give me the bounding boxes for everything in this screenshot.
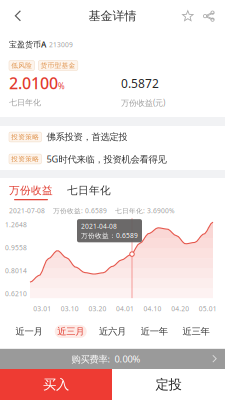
staticText: 5G时代来临，投资机会看得见 <box>46 153 166 165</box>
staticText: 2021-07-08 <box>9 206 45 215</box>
staticText: 购买费率: 0.00% <box>71 353 140 365</box>
staticText: 04.10 <box>144 304 162 313</box>
staticText: 05.01 <box>199 304 217 313</box>
staticText: 万份收益 <box>9 184 53 197</box>
button[interactable]: 投资策略 <box>0 148 225 170</box>
staticText: 04.20 <box>171 304 189 313</box>
staticText: % <box>58 81 65 91</box>
button[interactable]: 七日年化 <box>67 184 111 200</box>
staticText: 0.5872 <box>121 75 159 91</box>
staticText: 定投 <box>155 376 181 393</box>
staticText: 万份收益(元) <box>121 97 165 108</box>
button[interactable]: 近六月 <box>92 325 133 338</box>
staticText: 万份收益: 0.6589 <box>53 206 107 215</box>
button[interactable]: 定投 <box>112 369 225 400</box>
staticText: 2.0100 <box>9 72 58 94</box>
staticText: 03.20 <box>88 304 106 313</box>
staticText: 近三月 <box>57 326 84 337</box>
staticText: 万份收益：0.6589 <box>81 231 138 240</box>
button[interactable]: 分享 <box>198 0 220 32</box>
staticText: 1.2648 <box>5 220 27 229</box>
staticText: 投资策略 <box>11 155 39 163</box>
staticText: 0.6210 <box>5 289 27 298</box>
button[interactable]: 近三年 <box>175 325 217 338</box>
staticText: 近一月 <box>15 326 42 337</box>
staticText: 近三年 <box>183 326 210 337</box>
button[interactable]: 返回 <box>5 0 31 32</box>
button[interactable]: 收藏 <box>178 0 198 32</box>
staticText: 03.10 <box>61 304 79 313</box>
button[interactable]: 投资策略 <box>0 126 225 148</box>
staticText: 宝盈货币A <box>9 39 46 50</box>
button[interactable]: 购买费率: 0.00% <box>0 349 225 369</box>
staticText: 投资策略 <box>11 133 39 141</box>
staticText: 03.01 <box>33 304 51 313</box>
button[interactable]: 近一年 <box>133 325 175 338</box>
staticText: 近六月 <box>99 326 126 337</box>
staticText: 低风险 <box>11 61 32 70</box>
staticText: 2021-04-08 <box>81 222 117 230</box>
staticText: 基金详情 <box>88 9 136 23</box>
staticText: 0.9558 <box>5 243 27 252</box>
staticText: 213009 <box>49 40 73 49</box>
button[interactable]: 买入 <box>0 369 112 400</box>
button[interactable]: 近三月 <box>50 325 92 338</box>
staticText: 04.01 <box>116 304 134 313</box>
button[interactable]: 近一月 <box>8 325 50 338</box>
staticText: 近一年 <box>141 326 168 337</box>
staticText: 七日年化 <box>67 184 111 197</box>
staticText: 佛系投资，首选定投 <box>46 131 127 143</box>
staticText: 买入 <box>43 376 69 393</box>
staticText: 七日年化 <box>9 98 41 107</box>
staticText: 0.8014 <box>5 266 27 275</box>
button[interactable]: 万份收益 <box>9 184 53 200</box>
staticText: 七日年化: 3.6900% <box>115 206 175 215</box>
staticText: 货币型基金 <box>41 61 76 70</box>
